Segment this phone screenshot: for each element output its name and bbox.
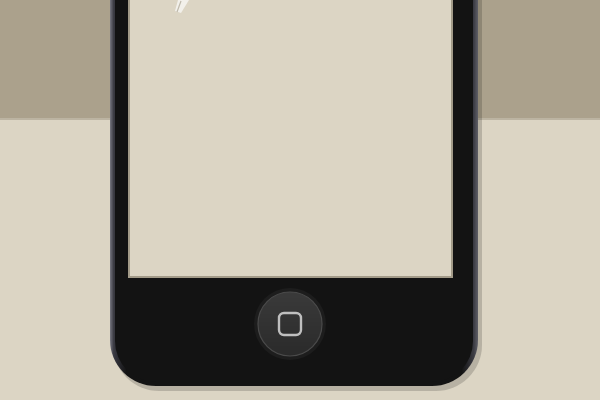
button[interactable]: Home	[258, 292, 322, 356]
